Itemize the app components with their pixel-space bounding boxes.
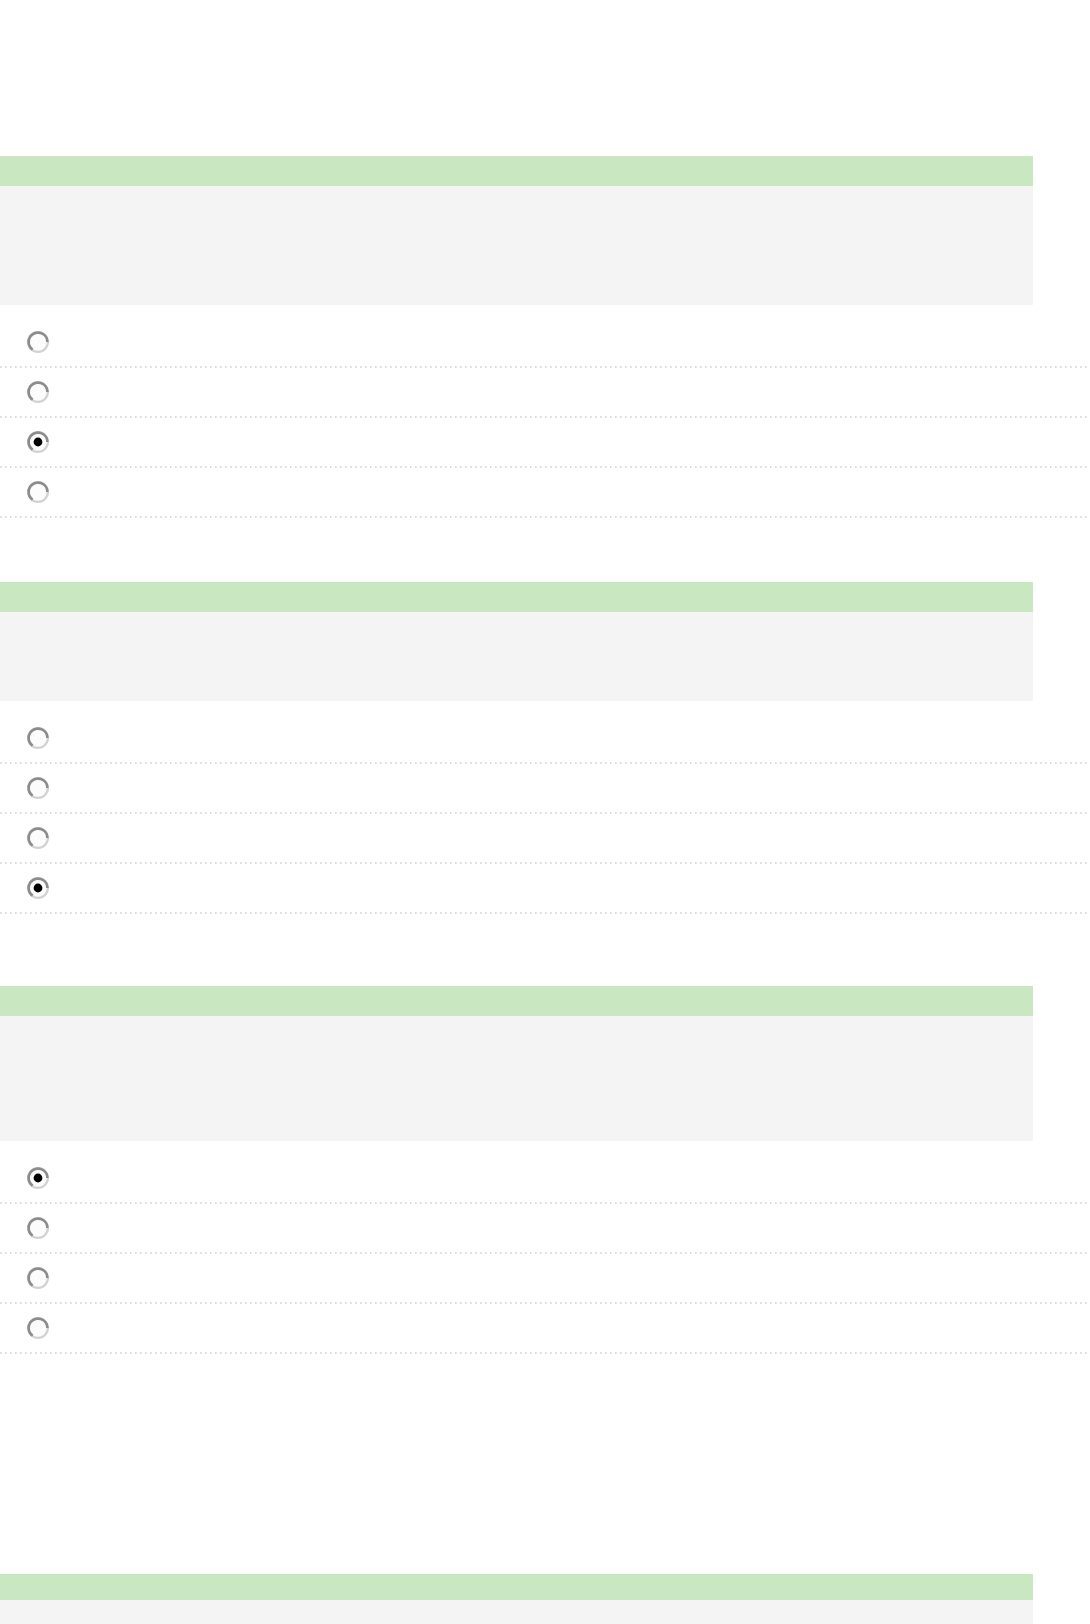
button[interactable]: Answer option <box>0 368 1090 416</box>
button[interactable]: Answer option <box>0 1204 1090 1252</box>
button[interactable]: Answer option <box>0 714 1090 762</box>
button[interactable]: Selected answer option <box>0 864 1090 912</box>
button[interactable]: Selected answer option <box>0 1154 1090 1202</box>
button[interactable]: Answer option <box>0 1304 1090 1352</box>
button[interactable]: Answer option <box>0 1254 1090 1302</box>
button[interactable]: Answer option <box>0 814 1090 862</box>
button[interactable]: Answer option <box>0 764 1090 812</box>
button[interactable]: Answer option <box>0 318 1090 366</box>
button[interactable]: Answer option <box>0 468 1090 516</box>
button[interactable]: Selected answer option <box>0 418 1090 466</box>
